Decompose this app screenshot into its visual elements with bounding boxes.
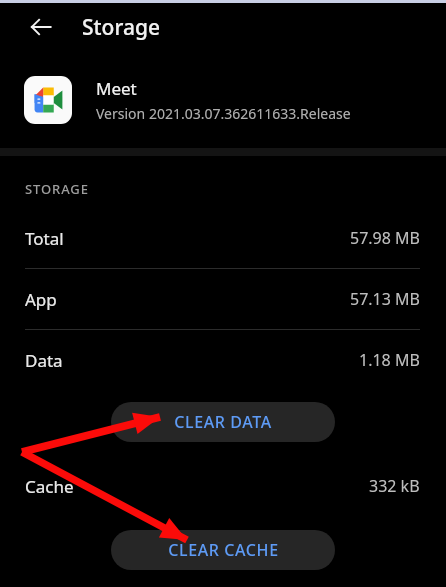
button[interactable]: Data: [0, 330, 446, 390]
staticText: 57.13 MB: [350, 288, 420, 310]
button[interactable]: Total: [0, 208, 446, 268]
staticText: STORAGE: [25, 180, 89, 198]
button[interactable]: Meet: [0, 52, 446, 148]
staticText: App: [25, 288, 57, 311]
staticText: CLEAR CACHE: [168, 539, 279, 561]
button[interactable]: CLEAR CACHE: [111, 530, 335, 570]
staticText: Meet: [96, 77, 137, 100]
button[interactable]: App: [0, 269, 446, 329]
staticText: Storage: [82, 13, 160, 42]
button[interactable]: CLEAR DATA: [111, 402, 335, 442]
button[interactable]: Cache: [0, 456, 446, 516]
staticText: Data: [25, 349, 63, 372]
staticText: 57.98 MB: [350, 227, 420, 249]
staticText: 332 kB: [369, 475, 420, 497]
staticText: Total: [25, 227, 64, 250]
staticText: CLEAR DATA: [174, 411, 272, 433]
staticText: 1.18 MB: [359, 349, 420, 371]
staticText: Version 2021.03.07.362611633.Release: [96, 104, 351, 123]
button[interactable]: Back: [20, 6, 62, 48]
staticText: Cache: [25, 475, 74, 498]
